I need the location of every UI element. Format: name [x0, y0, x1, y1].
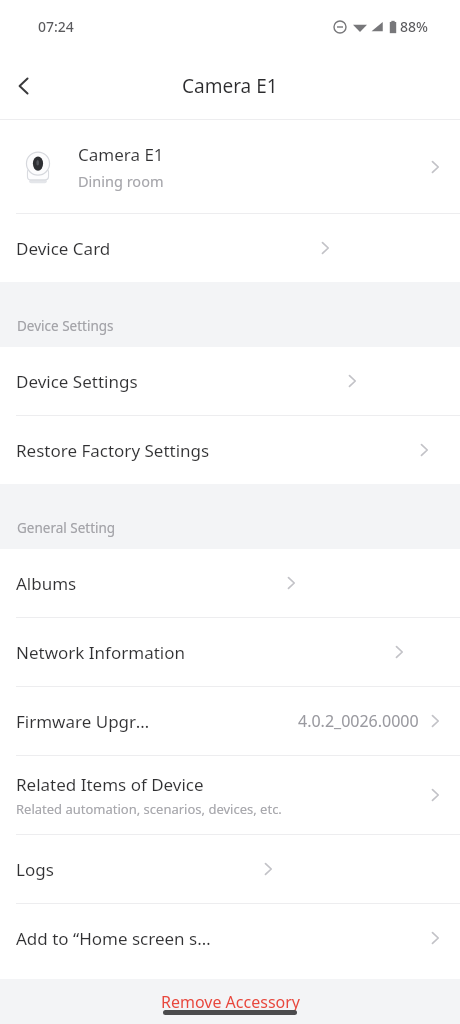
staticText: 4.0.2_0026.0000	[298, 710, 419, 732]
staticText: Related Items of Device	[16, 773, 204, 796]
button[interactable]: Firmware Upgrade	[0, 687, 460, 755]
button[interactable]: Albums	[0, 549, 460, 617]
button[interactable]: Network Information	[0, 618, 460, 686]
staticText: Logs	[16, 858, 54, 881]
staticText: Device Settings	[17, 317, 114, 335]
staticText: Related automation, scenarios, devices, …	[16, 800, 282, 818]
button[interactable]: Logs	[0, 835, 460, 903]
staticText: Camera E1	[78, 143, 164, 166]
staticText: Network Information	[16, 641, 185, 664]
button[interactable]: Back	[0, 62, 48, 110]
button[interactable]: Related Items of Device	[0, 756, 460, 834]
staticText: Add to “Home screen shortcuts”	[16, 927, 221, 950]
staticText: Camera E1	[182, 73, 278, 99]
button[interactable]: Remove Accessory	[0, 979, 460, 1024]
staticText: Firmware Upgrade	[16, 710, 157, 733]
staticText: 88%	[400, 17, 428, 36]
staticText: Remove Accessory	[161, 991, 300, 1013]
button[interactable]: Device Settings	[0, 347, 460, 415]
staticText: Device Card	[16, 237, 111, 260]
staticText: General Setting	[17, 519, 116, 537]
staticText: Albums	[16, 572, 77, 595]
button[interactable]: Add to “Home screen shortcuts”	[0, 904, 460, 972]
staticText: 07:24	[38, 17, 74, 36]
button[interactable]: Restore Factory Settings	[0, 416, 460, 484]
staticText: Dining room	[78, 171, 164, 191]
button[interactable]: Camera E1	[0, 120, 460, 213]
button[interactable]: Device Card	[0, 214, 460, 282]
staticText: Restore Factory Settings	[16, 439, 210, 462]
staticText: Device Settings	[16, 370, 138, 393]
